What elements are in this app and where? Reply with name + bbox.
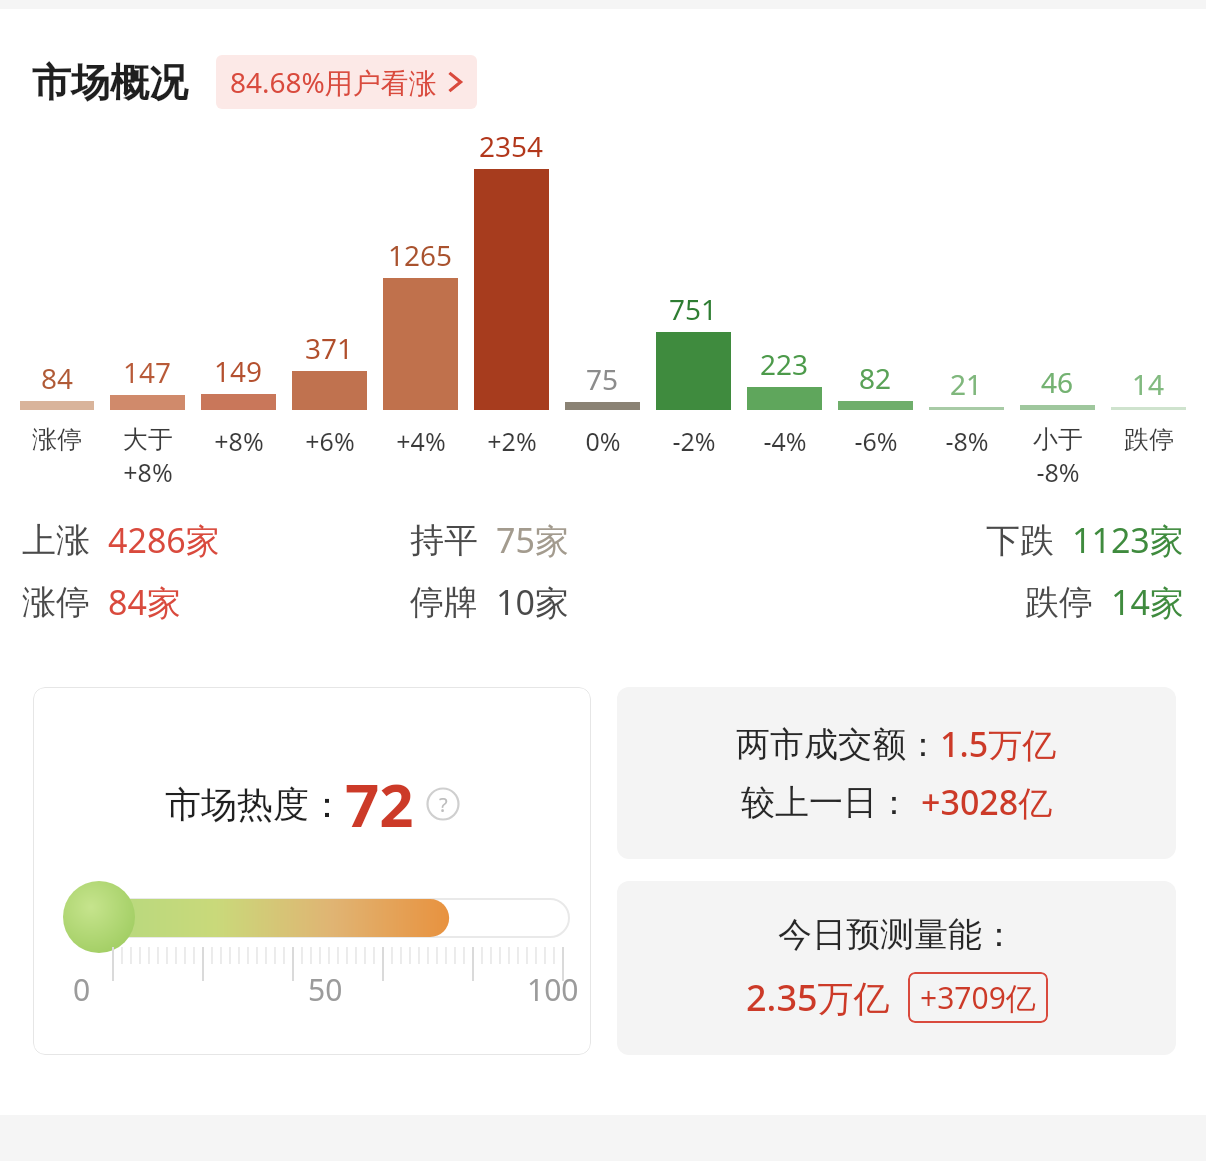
- staticText: 4286家: [108, 517, 220, 563]
- button[interactable]: 两市成交额：: [617, 687, 1176, 859]
- staticText: 0: [73, 969, 91, 1010]
- staticText: -4%: [763, 424, 807, 458]
- staticText: +3709亿: [920, 977, 1036, 1018]
- staticText: 75: [586, 360, 619, 398]
- staticText: 46: [1041, 363, 1074, 401]
- staticText: 停牌: [410, 581, 478, 624]
- staticText: 223: [760, 345, 809, 383]
- button[interactable]: 今日预测量能：: [617, 881, 1176, 1055]
- staticText: 149: [214, 352, 263, 390]
- staticText: +3028亿: [921, 779, 1053, 825]
- staticText: 82: [859, 359, 892, 397]
- staticText: 市场概况: [32, 58, 188, 107]
- staticText: 84.68%用户看涨: [230, 63, 437, 101]
- staticText: 1265: [388, 236, 453, 274]
- staticText: -2%: [672, 424, 716, 458]
- staticText: 今日预测量能：: [778, 913, 1016, 956]
- staticText: -6%: [854, 424, 898, 458]
- staticText: 涨停: [22, 581, 90, 624]
- staticText: 0%: [585, 424, 621, 458]
- staticText: 持平: [410, 519, 478, 562]
- button[interactable]: 帮助说明: [426, 787, 460, 821]
- staticText: 14: [1132, 365, 1165, 403]
- staticText: 751: [669, 290, 718, 328]
- staticText: +6%: [305, 424, 355, 458]
- button[interactable]: 市场热度：: [33, 687, 591, 1055]
- staticText: 跌停: [1025, 581, 1093, 624]
- staticText: +4%: [396, 424, 446, 458]
- staticText: 下跌: [986, 519, 1054, 562]
- staticText: 50: [308, 969, 343, 1010]
- staticText: 2.35万亿: [746, 973, 890, 1022]
- staticText: 大于: [123, 424, 173, 455]
- staticText: 75家: [496, 517, 569, 563]
- staticText: 72: [345, 763, 414, 845]
- staticText: 371: [305, 329, 354, 367]
- staticText: +2%: [487, 424, 537, 458]
- staticText: 涨停: [32, 424, 82, 455]
- staticText: 两市成交额：: [736, 723, 940, 766]
- staticText: 84: [41, 359, 74, 397]
- staticText: -8%: [945, 424, 989, 458]
- staticText: 84家: [108, 579, 181, 625]
- staticText: 跌停: [1124, 424, 1174, 455]
- staticText: 较上一日：: [741, 781, 911, 824]
- staticText: 100: [527, 969, 579, 1010]
- staticText: +8%: [214, 424, 264, 458]
- staticText: 1.5万亿: [940, 721, 1057, 767]
- staticText: +8%: [123, 455, 173, 489]
- staticText: 14家: [1111, 579, 1184, 625]
- staticText: 上涨: [22, 519, 90, 562]
- button[interactable]: 84.68%用户看涨: [216, 55, 477, 109]
- staticText: 1123家: [1072, 517, 1184, 563]
- staticText: 147: [123, 353, 172, 391]
- staticText: -8%: [1036, 455, 1080, 489]
- staticText: 10家: [496, 579, 569, 625]
- staticText: 21: [950, 365, 983, 403]
- staticText: 小于: [1033, 424, 1083, 455]
- staticText: ?: [439, 791, 448, 818]
- staticText: 2354: [479, 127, 544, 165]
- staticText: 市场热度：: [165, 782, 345, 827]
